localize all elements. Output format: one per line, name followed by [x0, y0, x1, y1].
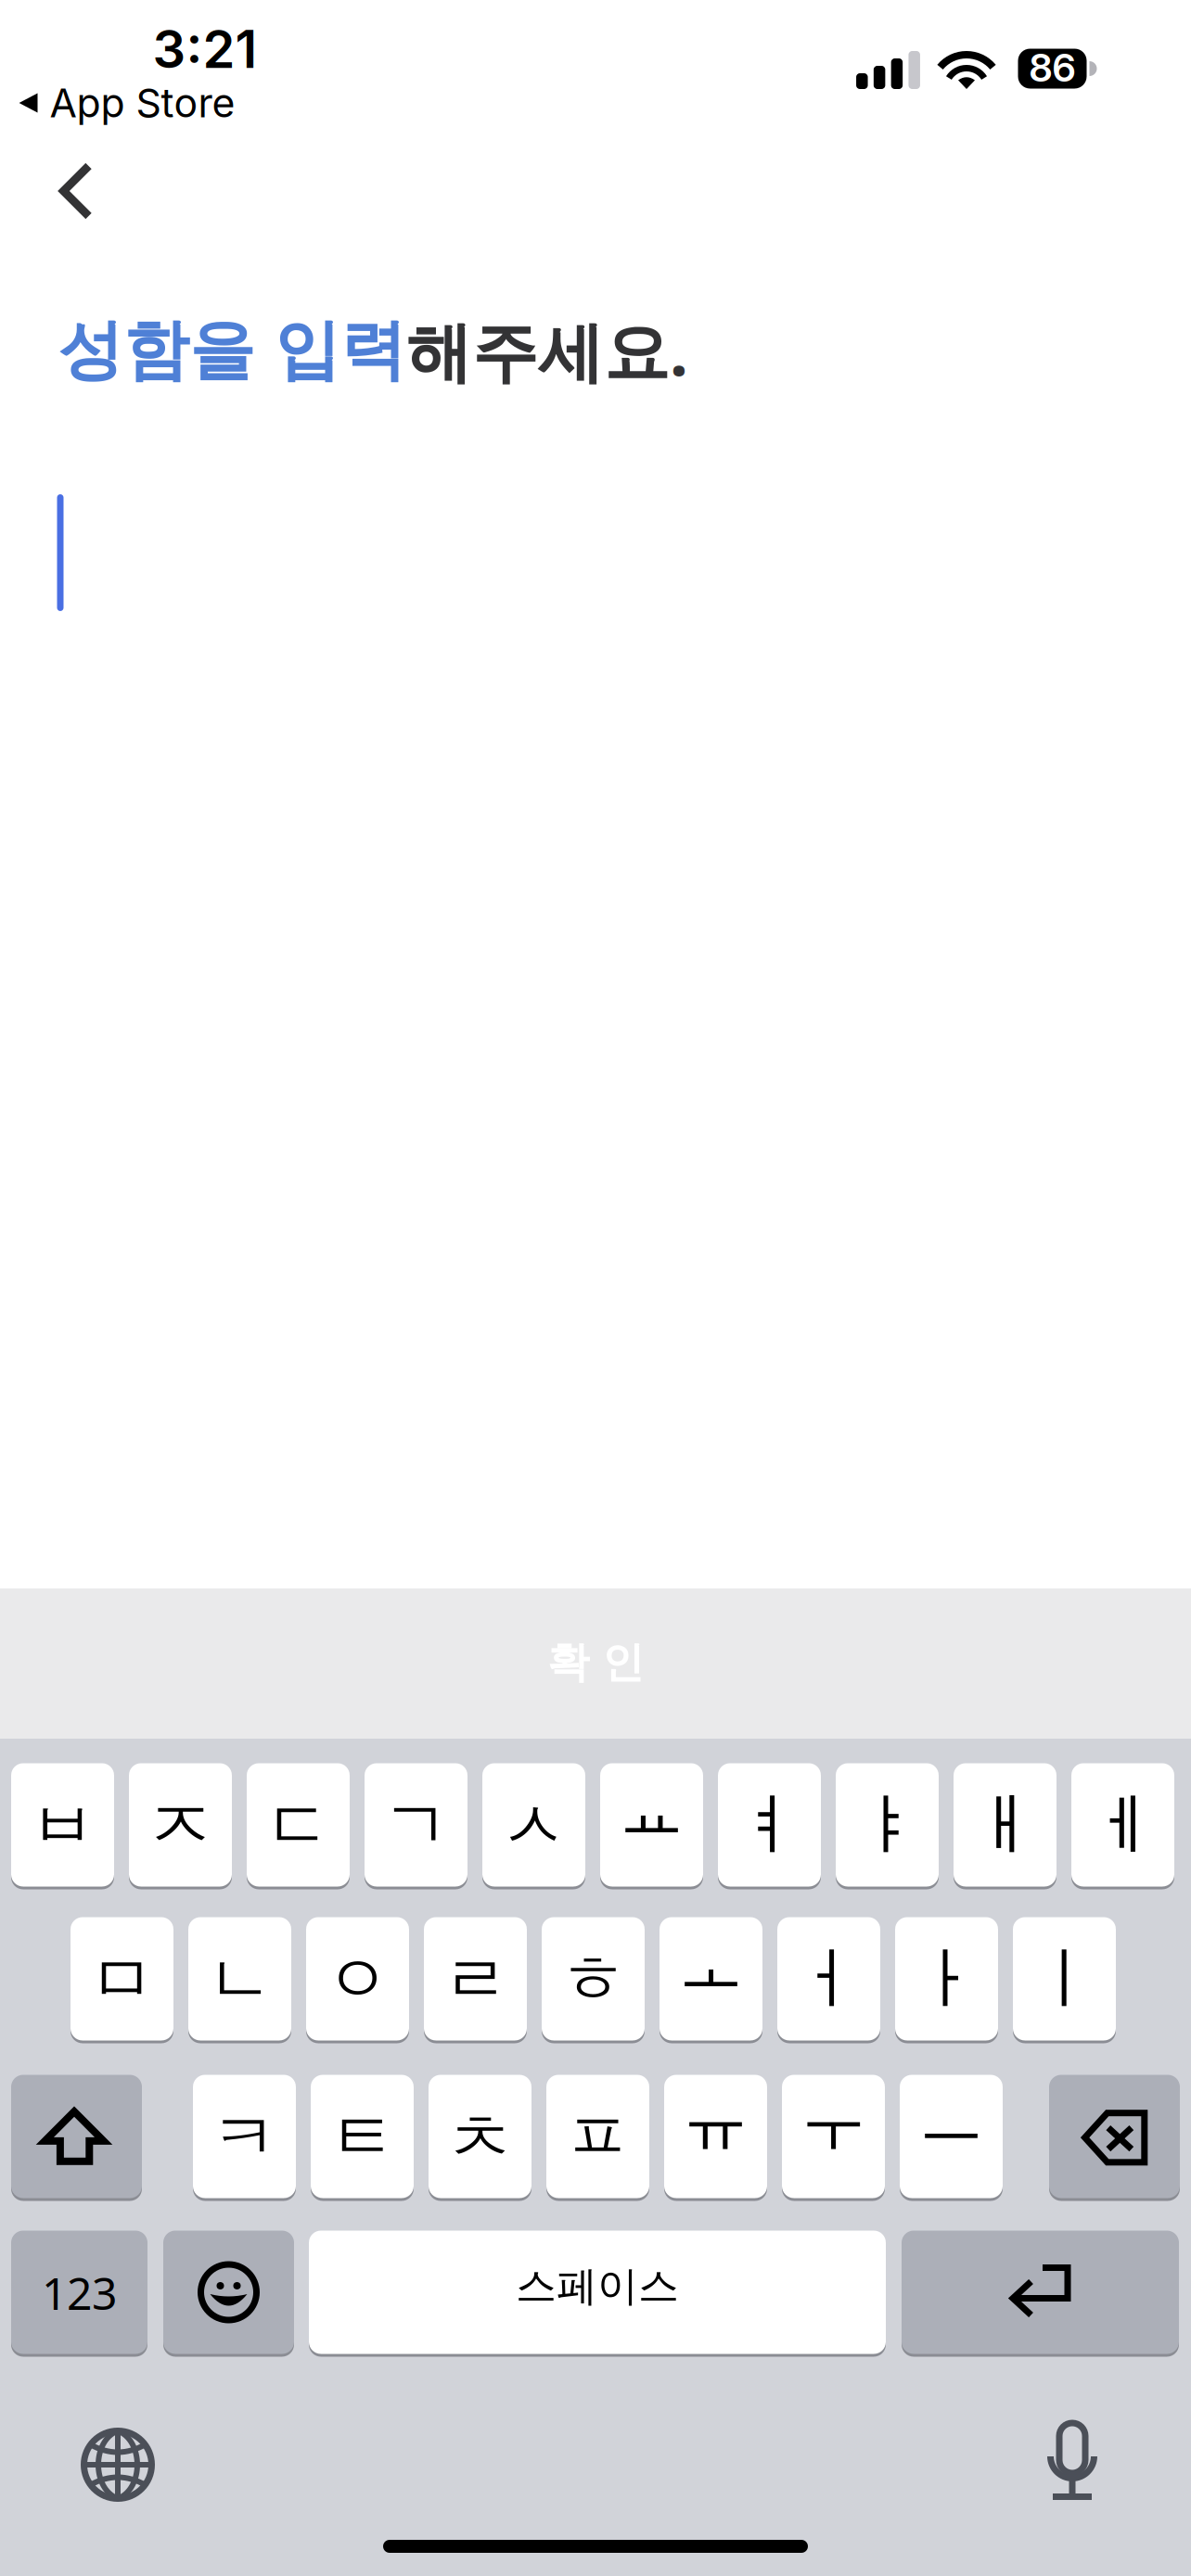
staticText: ㅋ: [211, 2095, 278, 2179]
staticText: ㄷ: [265, 1784, 332, 1868]
staticText: ㅕ: [736, 1783, 803, 1867]
staticText: ㅐ: [972, 1783, 1038, 1867]
button[interactable]: Return: [902, 2229, 1179, 2355]
button[interactable]: ㅊ: [429, 2073, 531, 2200]
button[interactable]: Delete: [1049, 2073, 1180, 2200]
button[interactable]: ㅑ: [836, 1762, 939, 1888]
button[interactable]: ㄴ: [188, 1916, 291, 2042]
button[interactable]: ㅛ: [600, 1762, 703, 1888]
button[interactable]: ㅌ: [311, 2073, 414, 2200]
staticText: 86: [1029, 45, 1076, 91]
staticText: ㅎ: [560, 1937, 627, 2021]
button[interactable]: ㅔ: [1071, 1762, 1174, 1888]
button[interactable]: ㅠ: [664, 2073, 767, 2200]
button[interactable]: 123: [11, 2229, 147, 2355]
staticText: ㅗ: [678, 1923, 744, 2007]
button[interactable]: Emoji: [163, 2229, 294, 2355]
staticText: ㄴ: [206, 1938, 273, 2022]
button[interactable]: ㅈ: [129, 1762, 232, 1888]
staticText: ㅂ: [29, 1784, 96, 1868]
button[interactable]: ㅍ: [546, 2073, 649, 2200]
staticText: ㅇ: [324, 1937, 391, 2021]
button[interactable]: ㅂ: [11, 1762, 114, 1888]
button[interactable]: ㅏ: [895, 1916, 998, 2042]
staticText: ㅡ: [918, 2077, 985, 2161]
button[interactable]: ㅜ: [782, 2073, 885, 2200]
button[interactable]: App Store: [19, 79, 235, 127]
button[interactable]: ㅅ: [482, 1762, 585, 1888]
button[interactable]: ㅡ: [900, 2073, 1003, 2200]
staticText: ㅔ: [1089, 1783, 1156, 1867]
staticText: ㅏ: [913, 1937, 980, 2021]
button[interactable]: ㅋ: [193, 2073, 296, 2200]
staticText: 123: [42, 2262, 117, 2323]
staticText: ㄹ: [442, 1938, 509, 2022]
staticText: ㅁ: [89, 1938, 155, 2022]
button[interactable]: ㄷ: [247, 1762, 350, 1888]
button[interactable]: Next keyboard: [81, 2428, 155, 2502]
button[interactable]: ㅕ: [718, 1762, 821, 1888]
staticText: ㅈ: [147, 1783, 214, 1867]
staticText: App Store: [50, 79, 235, 127]
staticText: 확 인: [547, 1636, 644, 1689]
button[interactable]: ㅇ: [306, 1916, 409, 2042]
button[interactable]: Back: [26, 135, 126, 247]
staticText: ㄱ: [383, 1783, 449, 1867]
staticText: 해주세요.: [406, 306, 688, 395]
button[interactable]: ㅎ: [542, 1916, 645, 2042]
button[interactable]: ㅗ: [660, 1916, 762, 2042]
button[interactable]: ㅐ: [954, 1762, 1057, 1888]
button[interactable]: ㅓ: [777, 1916, 880, 2042]
button[interactable]: ㅣ: [1013, 1916, 1116, 2042]
staticText: ㅣ: [1031, 1937, 1098, 2021]
button[interactable]: ㅁ: [70, 1916, 173, 2042]
button[interactable]: Shift: [11, 2073, 142, 2200]
staticText: ㅑ: [854, 1783, 921, 1867]
staticText: 3:21: [153, 18, 257, 81]
staticText: ㅜ: [800, 2080, 867, 2164]
staticText: 성함을 입력: [58, 309, 406, 392]
staticText: ㅓ: [795, 1937, 862, 2021]
button[interactable]: ㄱ: [365, 1762, 467, 1888]
button[interactable]: 스페이스: [309, 2229, 886, 2355]
button[interactable]: Dictation: [1045, 2423, 1099, 2501]
staticText: ㅊ: [447, 2097, 513, 2181]
staticText: ㅠ: [682, 2080, 749, 2164]
staticText: ㅅ: [500, 1784, 567, 1868]
button[interactable]: ㄹ: [424, 1916, 527, 2042]
staticText: ㅍ: [564, 2095, 631, 2179]
staticText: ㅛ: [618, 1769, 685, 1853]
staticText: 스페이스: [516, 2261, 679, 2312]
staticText: ㅌ: [329, 2095, 396, 2179]
